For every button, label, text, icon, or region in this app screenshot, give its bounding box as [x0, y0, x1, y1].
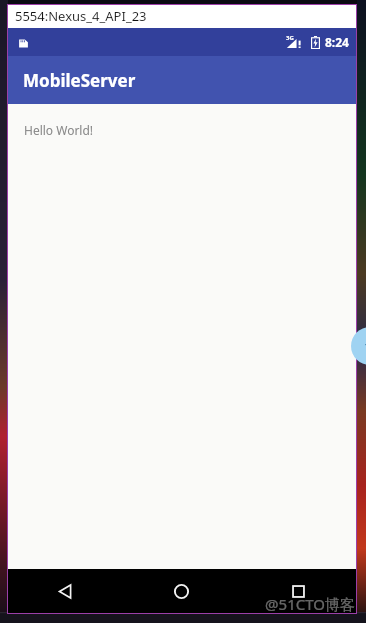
staticText: 3G	[286, 34, 294, 42]
button[interactable]: Recent apps	[240, 569, 357, 614]
staticText: @51CTO博客	[265, 594, 355, 614]
staticText: 17	[364, 339, 366, 354]
button[interactable]: Back	[7, 569, 123, 614]
button[interactable]: Hello World!	[24, 122, 94, 138]
button[interactable]: Home	[123, 569, 240, 614]
button[interactable]: MobileServer	[7, 56, 357, 104]
button[interactable]: Notification badge	[351, 327, 366, 365]
staticText: 5554:Nexus_4_API_23	[15, 7, 147, 25]
staticText: MobileServer	[23, 69, 136, 92]
staticText: 8:24	[325, 34, 349, 50]
